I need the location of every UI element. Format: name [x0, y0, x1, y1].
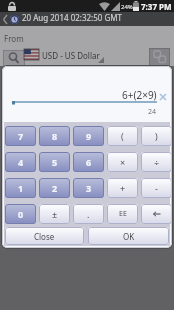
staticText: 5 [52, 156, 58, 168]
staticText: 1 [18, 182, 24, 194]
button[interactable] [141, 204, 172, 224]
staticText: 9 [86, 130, 92, 142]
staticText: 8 [52, 130, 58, 142]
button[interactable]: EE [107, 204, 138, 224]
staticText: USD - US Dollar [42, 50, 100, 61]
staticText: + [120, 182, 126, 194]
staticText: 6 [86, 156, 92, 168]
button[interactable]: ± [39, 204, 70, 224]
button[interactable]: . [73, 204, 104, 224]
staticText: ( [121, 130, 124, 142]
button[interactable] [158, 92, 168, 102]
staticText: Close [34, 231, 55, 242]
staticText: 24 [148, 107, 157, 117]
staticText: 20 Aug 2014 02:32:50 GMT [22, 12, 123, 26]
staticText: × [120, 156, 126, 168]
staticText: 0 [18, 208, 24, 220]
staticText: ÷ [154, 156, 160, 168]
staticText: EE [119, 209, 127, 219]
button[interactable]: OK [88, 227, 169, 245]
staticText: 24% [121, 3, 133, 11]
staticText: 3 [86, 182, 92, 194]
staticText: 4 [18, 156, 24, 168]
button[interactable]: USD - US Dollar [42, 44, 146, 66]
staticText: OK [123, 231, 135, 242]
staticText: 2 [52, 182, 58, 194]
button[interactable]: 9 [73, 126, 104, 146]
button[interactable]: ) [141, 126, 172, 146]
button[interactable]: ÷ [141, 152, 172, 172]
button[interactable] [3, 50, 25, 67]
button[interactable]: + [107, 178, 138, 198]
button[interactable]: 2 [39, 178, 70, 198]
staticText: . [87, 208, 90, 220]
button[interactable]: 4 [5, 152, 36, 172]
staticText: 6+(2×9) [122, 88, 157, 102]
button[interactable]: 0 [5, 204, 36, 224]
button[interactable]: 5 [39, 152, 70, 172]
button[interactable]: 7 [5, 126, 36, 146]
button[interactable]: 3 [73, 178, 104, 198]
staticText: ± [52, 208, 58, 220]
button[interactable] [149, 48, 170, 66]
staticText: 7 [18, 130, 24, 142]
button[interactable]: × [107, 152, 138, 172]
staticText: 7:37 PM [141, 1, 172, 12]
button[interactable]: 1 [5, 178, 36, 198]
button[interactable]: 8 [39, 126, 70, 146]
button[interactable]: ( [107, 126, 138, 146]
staticText: - [155, 182, 158, 194]
staticText: ) [155, 130, 158, 142]
button[interactable]: 6 [73, 152, 104, 172]
button[interactable]: - [141, 178, 172, 198]
staticText: From [4, 33, 24, 44]
button[interactable]: Close [5, 227, 84, 245]
